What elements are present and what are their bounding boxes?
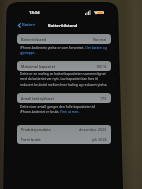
staticText: Maksimal kapasitet [21,64,56,69]
button[interactable]: Dette viser antall ganger den fulle kapa… [20,104,110,114]
staticText: Normal [93,37,107,42]
button[interactable]: Maksimal kapasitet [17,61,111,71]
staticText: juli 2024 [92,137,107,142]
button[interactable]: Forst brukt [17,134,111,144]
staticText: Batteri [22,22,36,28]
button[interactable]: Produksjonsdato [17,125,111,134]
staticText: 100 % [96,64,107,69]
staticText: desember 2023 [79,127,107,132]
staticText: Batteritilstand [21,37,47,42]
staticText: Antall ladesykluser [21,96,55,101]
staticText: 18:04 [29,10,40,16]
staticText: Produksjonsdato [21,127,51,132]
staticText: Forst brukt [21,137,41,142]
staticText: 173 [100,96,107,101]
button[interactable]: Batteritilstand [17,34,111,44]
button[interactable]: Batteri [17,21,37,29]
button[interactable]: Antall ladesykluser [17,93,111,103]
staticText: Batteritilstand [48,23,78,28]
button[interactable]: iPhone-batteriets ytelse er som forvente… [20,45,110,55]
staticText: Dette er en maling av batterikapasiteten… [20,71,110,87]
